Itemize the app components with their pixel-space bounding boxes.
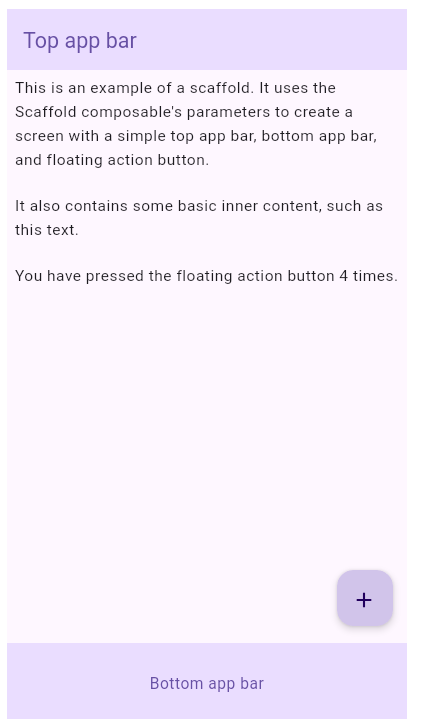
staticText: Bottom app bar: [7, 675, 407, 693]
button[interactable]: Bottom app bar: [7, 643, 407, 719]
staticText: This is an example of a scaffold. It use…: [15, 79, 377, 168]
staticText: You have pressed the floating action but…: [15, 267, 399, 285]
button[interactable]: [337, 570, 393, 626]
button[interactable]: Top app bar: [7, 9, 407, 70]
staticText: It also contains some basic inner conten…: [15, 197, 384, 238]
staticText: Top app bar: [23, 28, 137, 53]
